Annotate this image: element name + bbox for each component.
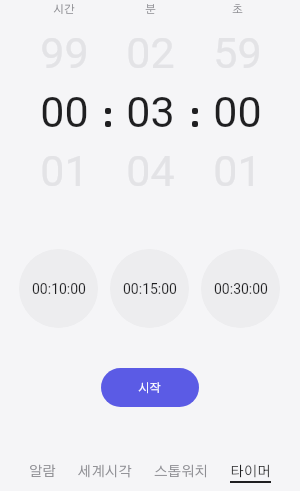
button[interactable]: 스톱워치 <box>154 457 208 485</box>
staticText: 01 <box>213 146 262 196</box>
button[interactable]: 타이머 <box>230 457 271 485</box>
staticText: 04 <box>126 146 175 196</box>
button[interactable]: 알람 <box>29 457 56 485</box>
button[interactable]: 00:10:00 <box>19 249 98 328</box>
staticText: 세계시각 <box>78 465 132 479</box>
staticText: 01 <box>40 146 89 196</box>
button[interactable]: 세계시각 <box>78 457 132 485</box>
staticText: 59 <box>213 28 262 78</box>
staticText: 02 <box>126 28 175 78</box>
staticText: 시작 <box>138 382 162 394</box>
staticText: 00:30:00 <box>214 281 268 297</box>
button[interactable]: 00:15:00 <box>110 249 189 328</box>
staticText: 00 <box>213 87 262 137</box>
staticText: 알람 <box>29 465 56 479</box>
staticText: 00:15:00 <box>123 281 177 297</box>
staticText: 타이머 <box>230 465 271 479</box>
staticText: 초 <box>232 4 243 15</box>
staticText: 시간 <box>53 4 75 15</box>
staticText: 스톱워치 <box>154 465 208 479</box>
staticText: 03 <box>126 87 175 137</box>
button[interactable]: 분 <box>107 0 194 200</box>
button[interactable]: 00:30:00 <box>201 249 280 328</box>
button[interactable]: 시작 <box>101 368 199 407</box>
staticText: 00:10:00 <box>32 281 86 297</box>
staticText: 분 <box>145 4 156 15</box>
staticText: 99 <box>40 28 89 78</box>
button[interactable]: 시간 <box>21 0 107 200</box>
staticText: 00 <box>40 87 89 137</box>
button[interactable]: 초 <box>194 0 281 200</box>
